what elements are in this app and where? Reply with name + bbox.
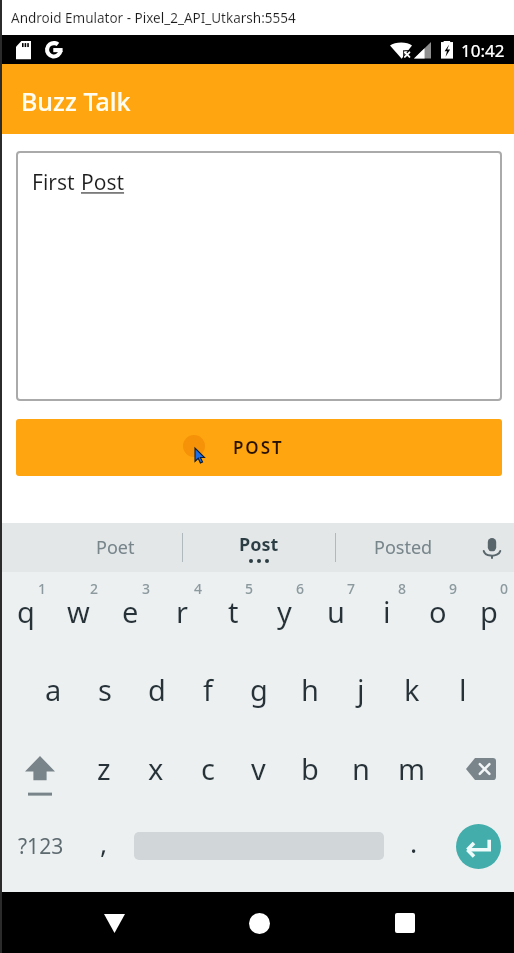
staticText: 7 — [347, 579, 356, 598]
staticText: f — [203, 670, 213, 709]
staticText: Poet — [96, 535, 135, 560]
button[interactable]: v — [233, 729, 284, 808]
button[interactable]: 9 — [412, 572, 463, 650]
staticText: c — [201, 749, 215, 788]
button[interactable]: c — [182, 729, 233, 808]
staticText: a — [45, 670, 62, 709]
staticText: b — [301, 749, 319, 788]
staticText: 10:42 — [461, 39, 505, 62]
staticText: Post — [239, 532, 279, 557]
button[interactable]: Backspace — [437, 729, 514, 808]
button[interactable]: b — [284, 729, 335, 808]
staticText: First — [32, 168, 81, 197]
staticText: e — [122, 592, 139, 631]
staticText: 8 — [398, 579, 407, 598]
staticText: ?123 — [18, 832, 64, 861]
staticText: 1 — [38, 579, 47, 598]
staticText: 9 — [449, 579, 458, 598]
button[interactable]: 1 — [0, 572, 52, 650]
staticText: 0 — [500, 579, 509, 598]
staticText: y — [277, 592, 292, 631]
button[interactable]: 5 — [208, 572, 259, 650]
button[interactable]: . — [388, 808, 440, 884]
button[interactable]: Home — [235, 899, 283, 947]
staticText: s — [98, 670, 112, 709]
button[interactable]: 7 — [310, 572, 361, 650]
staticText: , — [100, 824, 108, 861]
button[interactable]: Recents — [381, 899, 429, 947]
staticText: o — [429, 592, 447, 631]
staticText: z — [97, 749, 111, 788]
button[interactable]: 6 — [259, 572, 310, 650]
staticText: r — [176, 592, 188, 631]
staticText: 5 — [245, 579, 254, 598]
button[interactable]: n — [335, 729, 386, 808]
staticText: 2 — [90, 579, 99, 598]
staticText: g — [250, 670, 268, 709]
staticText: u — [327, 592, 345, 631]
button[interactable]: f — [182, 650, 233, 729]
staticText: v — [251, 749, 266, 788]
staticText: k — [404, 670, 420, 709]
staticText: t — [228, 592, 239, 631]
button[interactable]: d — [131, 650, 182, 729]
staticText: Post — [81, 168, 125, 197]
button[interactable]: Space — [130, 808, 388, 884]
staticText: d — [148, 670, 166, 709]
staticText: p — [480, 592, 498, 631]
staticText: 4 — [194, 579, 203, 598]
button[interactable]: 4 — [156, 572, 208, 650]
button[interactable]: Voice input — [470, 523, 514, 572]
staticText: . — [410, 824, 418, 861]
staticText: Buzz Talk — [21, 84, 131, 118]
button[interactable]: 0 — [463, 572, 514, 650]
staticText: i — [383, 592, 391, 631]
button[interactable]: Shift — [0, 729, 78, 808]
button[interactable]: l — [437, 650, 488, 729]
staticText: POST — [233, 436, 284, 459]
button[interactable]: j — [335, 650, 386, 729]
button[interactable]: x — [130, 729, 182, 808]
staticText: h — [301, 670, 319, 709]
button[interactable]: POST — [16, 419, 502, 476]
button[interactable]: 2 — [52, 572, 104, 650]
button[interactable]: 8 — [361, 572, 412, 650]
staticText: n — [352, 749, 370, 788]
button[interactable]: Back — [90, 899, 138, 947]
button[interactable]: g — [233, 650, 284, 729]
button[interactable]: h — [284, 650, 335, 729]
button[interactable]: Post — [187, 523, 331, 572]
staticText: x — [148, 749, 164, 788]
staticText: Posted — [374, 535, 433, 560]
button[interactable]: s — [79, 650, 131, 729]
button[interactable]: a — [27, 650, 79, 729]
staticText: w — [67, 592, 90, 631]
button[interactable]: z — [78, 729, 130, 808]
staticText: 3 — [142, 579, 151, 598]
staticText: m — [398, 749, 426, 788]
button[interactable]: m — [386, 729, 437, 808]
button[interactable]: First — [16, 151, 502, 401]
staticText: l — [459, 670, 467, 709]
button[interactable]: Poet — [43, 523, 187, 572]
staticText: Android Emulator - Pixel_2_API_Utkarsh:5… — [11, 9, 296, 27]
staticText: j — [357, 670, 365, 709]
button[interactable]: k — [386, 650, 437, 729]
staticText: q — [17, 592, 35, 631]
button[interactable]: Enter — [440, 808, 514, 884]
button[interactable]: ?123 — [0, 808, 78, 884]
button[interactable]: , — [78, 808, 130, 884]
button[interactable]: 3 — [104, 572, 156, 650]
staticText: 6 — [296, 579, 305, 598]
button[interactable]: Posted — [331, 523, 475, 572]
